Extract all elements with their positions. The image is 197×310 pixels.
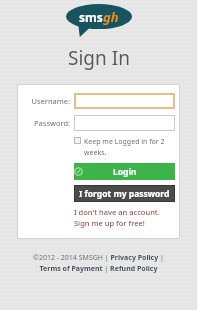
staticText: I don't have an account. Sign me up for … <box>74 207 175 228</box>
button[interactable]: Keep me logged in checkbox <box>74 137 81 144</box>
staticText: sms <box>79 9 103 25</box>
staticText: Username: <box>23 96 70 106</box>
staticText: ©2012 - 2014 SMSGH | Privacy Policy | Te… <box>22 253 175 273</box>
staticText: I forgot my password <box>79 188 170 200</box>
button[interactable] <box>74 115 175 131</box>
staticText: Password: <box>23 118 70 128</box>
staticText: Sign In <box>68 45 130 71</box>
staticText: gh <box>103 8 119 26</box>
staticText: Login <box>113 166 137 178</box>
button[interactable]: I don't have an account. Sign me up for … <box>74 207 175 228</box>
button[interactable]: Login <box>74 163 175 180</box>
button[interactable] <box>74 93 175 109</box>
staticText: Keep me Logged in for 2 weeks. <box>84 137 175 157</box>
button[interactable]: I forgot my password <box>74 185 175 202</box>
